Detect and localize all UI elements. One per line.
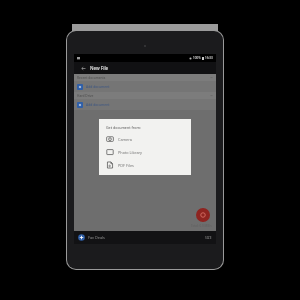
staticText: Camera xyxy=(118,137,132,142)
staticText: Photo Library xyxy=(118,150,143,155)
button[interactable]: Add document xyxy=(74,99,216,110)
staticText: New File xyxy=(90,65,109,71)
button[interactable]: PDF Files xyxy=(106,161,184,169)
button[interactable]: Add xyxy=(196,208,210,222)
staticText: 100% xyxy=(193,56,201,60)
staticText: Hard Drive xyxy=(77,94,94,98)
button[interactable]: Fav Deals xyxy=(74,231,216,244)
staticText: Recent documents xyxy=(77,76,106,80)
staticText: 16:33 xyxy=(205,56,213,60)
staticText: SIZE xyxy=(205,236,212,240)
staticText: PDF Files xyxy=(118,163,134,168)
button[interactable]: Add document xyxy=(74,81,216,92)
button[interactable]: Camera xyxy=(106,135,184,143)
button[interactable]: Back xyxy=(79,64,87,72)
staticText: Get document from: xyxy=(106,125,141,130)
staticText: Fav Deals xyxy=(88,235,105,240)
staticText: Add document xyxy=(86,102,110,107)
staticText: Add document xyxy=(86,84,110,89)
button[interactable]: Photo Library xyxy=(106,148,184,156)
